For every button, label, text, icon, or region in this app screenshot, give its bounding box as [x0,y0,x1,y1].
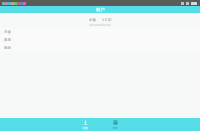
staticText: 账户 [96,7,105,12]
button[interactable]: 充值 [0,28,200,36]
staticText: ￥0.00 [101,17,112,22]
staticText: 我的 [112,126,118,129]
button[interactable]: 明细 [0,44,200,52]
button[interactable]: Downloads [77,118,93,131]
staticText: 余额 [89,18,96,22]
button[interactable]: 提现 [0,36,200,44]
staticText: 下载 [82,126,88,129]
staticText: 充值 [4,30,11,34]
button[interactable]: Profile [107,118,123,131]
staticText: 提现 [4,38,11,42]
staticText: 明细 [4,46,11,50]
